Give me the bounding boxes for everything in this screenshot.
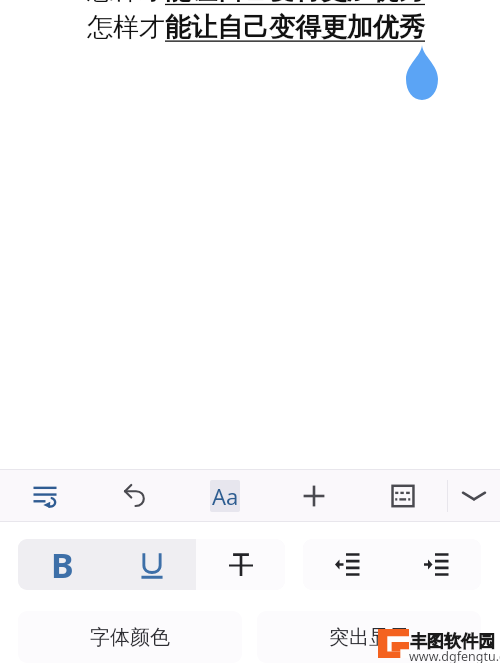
- button[interactable]: Decrease indent: [303, 539, 392, 590]
- staticText: 丰图软件园: [410, 631, 495, 652]
- staticText: 怎样才能让自己变得更加优秀 怎样才能让自己变得更加优秀: [87, 0, 425, 43]
- staticText: 突出显示: [329, 625, 409, 650]
- button[interactable]: Text wrap: [0, 470, 90, 521]
- button[interactable]: Underline: [107, 539, 196, 590]
- button[interactable]: Keyboard: [358, 470, 447, 521]
- staticText: B: [51, 542, 74, 588]
- button[interactable]: Collapse toolbar: [448, 470, 500, 521]
- button[interactable]: Bold: [18, 539, 107, 590]
- button[interactable]: Increase indent: [392, 539, 481, 590]
- button[interactable]: Insert: [269, 470, 358, 521]
- staticText: www.dgfengtu.com: [409, 648, 500, 663]
- button[interactable]: Strikethrough: [196, 539, 285, 590]
- staticText: Aa: [212, 481, 239, 511]
- button[interactable]: 突出显示: [257, 611, 481, 663]
- button[interactable]: 字体颜色: [18, 611, 242, 663]
- staticText: 字体颜色: [90, 625, 170, 650]
- button[interactable]: Undo: [90, 470, 180, 521]
- button[interactable]: Font style: [180, 470, 269, 521]
